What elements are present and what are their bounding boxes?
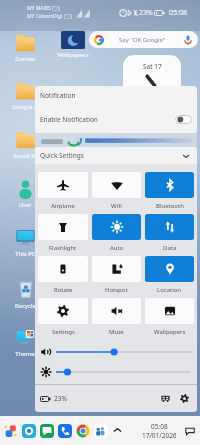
- button[interactable]: Wallpapers: [61, 31, 85, 49]
- staticText: 05:08: [169, 8, 187, 18]
- staticText: 4G: [53, 6, 59, 11]
- staticText: Bluetooth: [156, 202, 184, 210]
- button[interactable]: Messages: [38, 422, 56, 440]
- staticText: Recycle: [15, 302, 36, 310]
- staticText: Data: [163, 244, 177, 252]
- button[interactable]: Settings: [178, 392, 191, 405]
- button[interactable]: Say "OK Google": [89, 31, 198, 48]
- button[interactable]: Start: [2, 422, 20, 440]
- button[interactable]: Auto: [92, 214, 141, 256]
- button[interactable]: Data: [145, 214, 194, 256]
- staticText: 05:08: [151, 422, 168, 431]
- button[interactable]: This PC: [10, 228, 40, 258]
- button[interactable]: Theme: [10, 328, 40, 358]
- staticText: Hotspot: [105, 286, 128, 294]
- button[interactable]: Phone: [56, 422, 74, 440]
- staticText: Theme: [15, 350, 35, 358]
- staticText: Wifi: [111, 202, 122, 210]
- staticText: Quick Settings: [40, 151, 84, 160]
- button[interactable]: Chrome: [74, 422, 92, 440]
- staticText: Games: [15, 55, 35, 63]
- button[interactable]: Wifi: [92, 172, 141, 214]
- staticText: Google A: [12, 103, 38, 111]
- button[interactable]: [41, 342, 191, 362]
- button[interactable]: Rotate: [38, 256, 88, 298]
- button[interactable]: Bluetooth: [145, 172, 194, 214]
- button[interactable]: Mute: [92, 298, 141, 340]
- button[interactable]: Airplane: [38, 172, 88, 214]
- staticText: Sat 17: [143, 62, 162, 71]
- staticText: User: [18, 201, 32, 209]
- staticText: Rotate: [54, 286, 73, 294]
- staticText: MY MAXIS: [27, 5, 51, 12]
- staticText: Auto: [110, 244, 124, 252]
- staticText: 23%: [139, 8, 153, 18]
- staticText: 4G: [65, 14, 71, 19]
- button[interactable]: Google A: [10, 81, 40, 111]
- button[interactable]: Social M: [10, 130, 40, 160]
- staticText: Enable Notification: [40, 115, 98, 124]
- button[interactable]: Enable Notification: [35, 105, 197, 133]
- staticText: This PC: [15, 250, 36, 258]
- button[interactable]: Flashlight: [38, 214, 88, 256]
- staticText: Location: [157, 286, 182, 294]
- button[interactable]: Hotspot: [92, 256, 141, 298]
- staticText: Wallpapers: [56, 51, 90, 59]
- button[interactable]: Notifications: [183, 424, 197, 438]
- staticText: Wallpapers: [154, 328, 186, 336]
- button[interactable]: Edit tiles: [159, 392, 172, 405]
- staticText: Mute: [109, 328, 124, 336]
- button[interactable]: User: [10, 179, 40, 209]
- button[interactable]: Wallpapers: [145, 298, 194, 340]
- button[interactable]: Settings: [38, 298, 88, 340]
- staticText: 17/01/2026: [142, 431, 177, 440]
- staticText: Flashlight: [49, 244, 77, 252]
- button[interactable]: 05:08: [142, 422, 177, 440]
- staticText: Say "OK Google": [119, 36, 166, 44]
- staticText: MY CelcomDigi: [27, 13, 63, 20]
- button[interactable]: Recycle: [10, 280, 40, 310]
- button[interactable]: Contacts: [92, 422, 110, 440]
- staticText: Notification: [40, 91, 76, 100]
- button[interactable]: Photos: [20, 422, 38, 440]
- button[interactable]: [41, 362, 191, 382]
- button[interactable]: Location: [145, 256, 194, 298]
- button[interactable]: Games: [10, 33, 40, 63]
- staticText: Social M: [13, 152, 37, 160]
- staticText: Airplane: [51, 202, 75, 210]
- button[interactable]: Quick Settings: [35, 147, 197, 164]
- staticText: 23%: [54, 394, 67, 403]
- button[interactable]: Show hidden icons: [110, 423, 125, 438]
- staticText: Settings: [52, 328, 75, 336]
